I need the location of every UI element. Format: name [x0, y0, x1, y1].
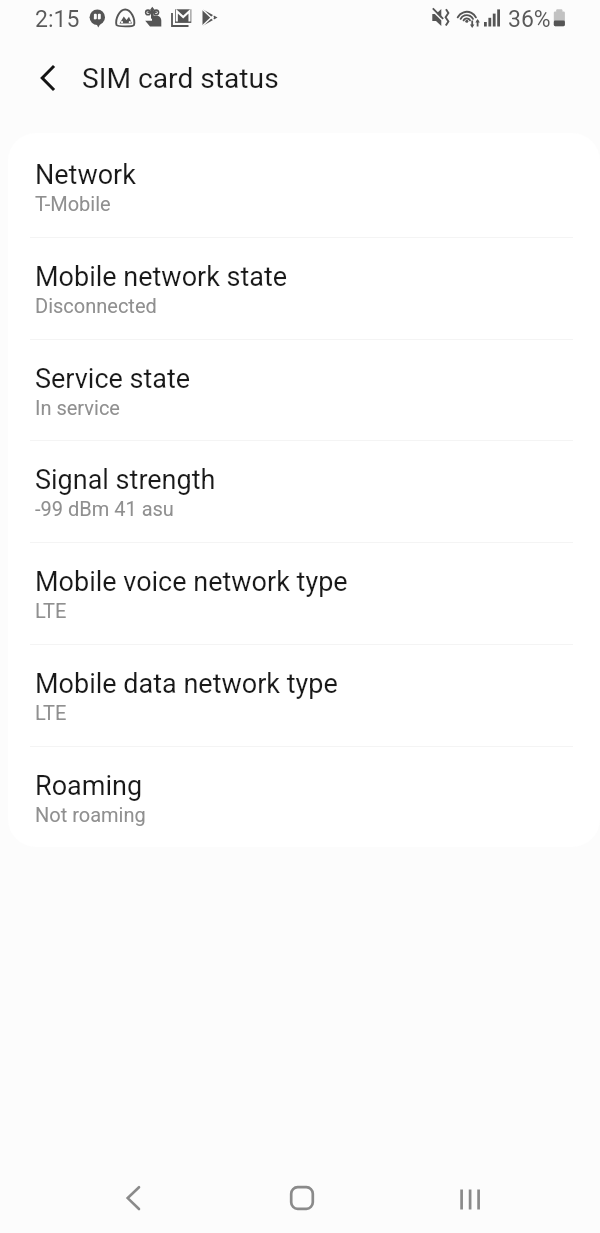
staticText: Service state	[35, 363, 191, 395]
button[interactable]: Network	[8, 133, 600, 235]
staticText: Network	[35, 159, 136, 191]
staticText: 36%	[508, 6, 551, 33]
staticText: Disconnected	[35, 294, 157, 317]
button[interactable]: Back	[99, 1163, 169, 1233]
staticText: Mobile voice network type	[35, 566, 348, 598]
button[interactable]: Mobile data network type	[8, 642, 600, 744]
staticText: Mobile network state	[35, 261, 288, 293]
button[interactable]: Mobile network state	[8, 235, 600, 337]
button[interactable]: Roaming	[8, 744, 600, 846]
staticText: Not roaming	[35, 803, 146, 826]
staticText: SIM card status	[82, 62, 279, 95]
staticText: 2:15	[35, 6, 80, 33]
button[interactable]: Back	[23, 53, 71, 101]
staticText: T-Mobile	[35, 192, 111, 215]
staticText: LTE	[35, 701, 67, 724]
staticText: LTE	[35, 599, 67, 622]
staticText: Mobile data network type	[35, 668, 338, 700]
staticText: In service	[35, 396, 120, 419]
button[interactable]: Recent apps	[436, 1163, 506, 1233]
button[interactable]: Signal strength	[8, 438, 600, 540]
button[interactable]: Service state	[8, 337, 600, 439]
button[interactable]: Home	[267, 1163, 337, 1233]
staticText: Signal strength	[35, 464, 216, 496]
staticText: Roaming	[35, 770, 143, 802]
button[interactable]: Mobile voice network type	[8, 540, 600, 642]
staticText: -99 dBm 41 asu	[35, 497, 174, 520]
